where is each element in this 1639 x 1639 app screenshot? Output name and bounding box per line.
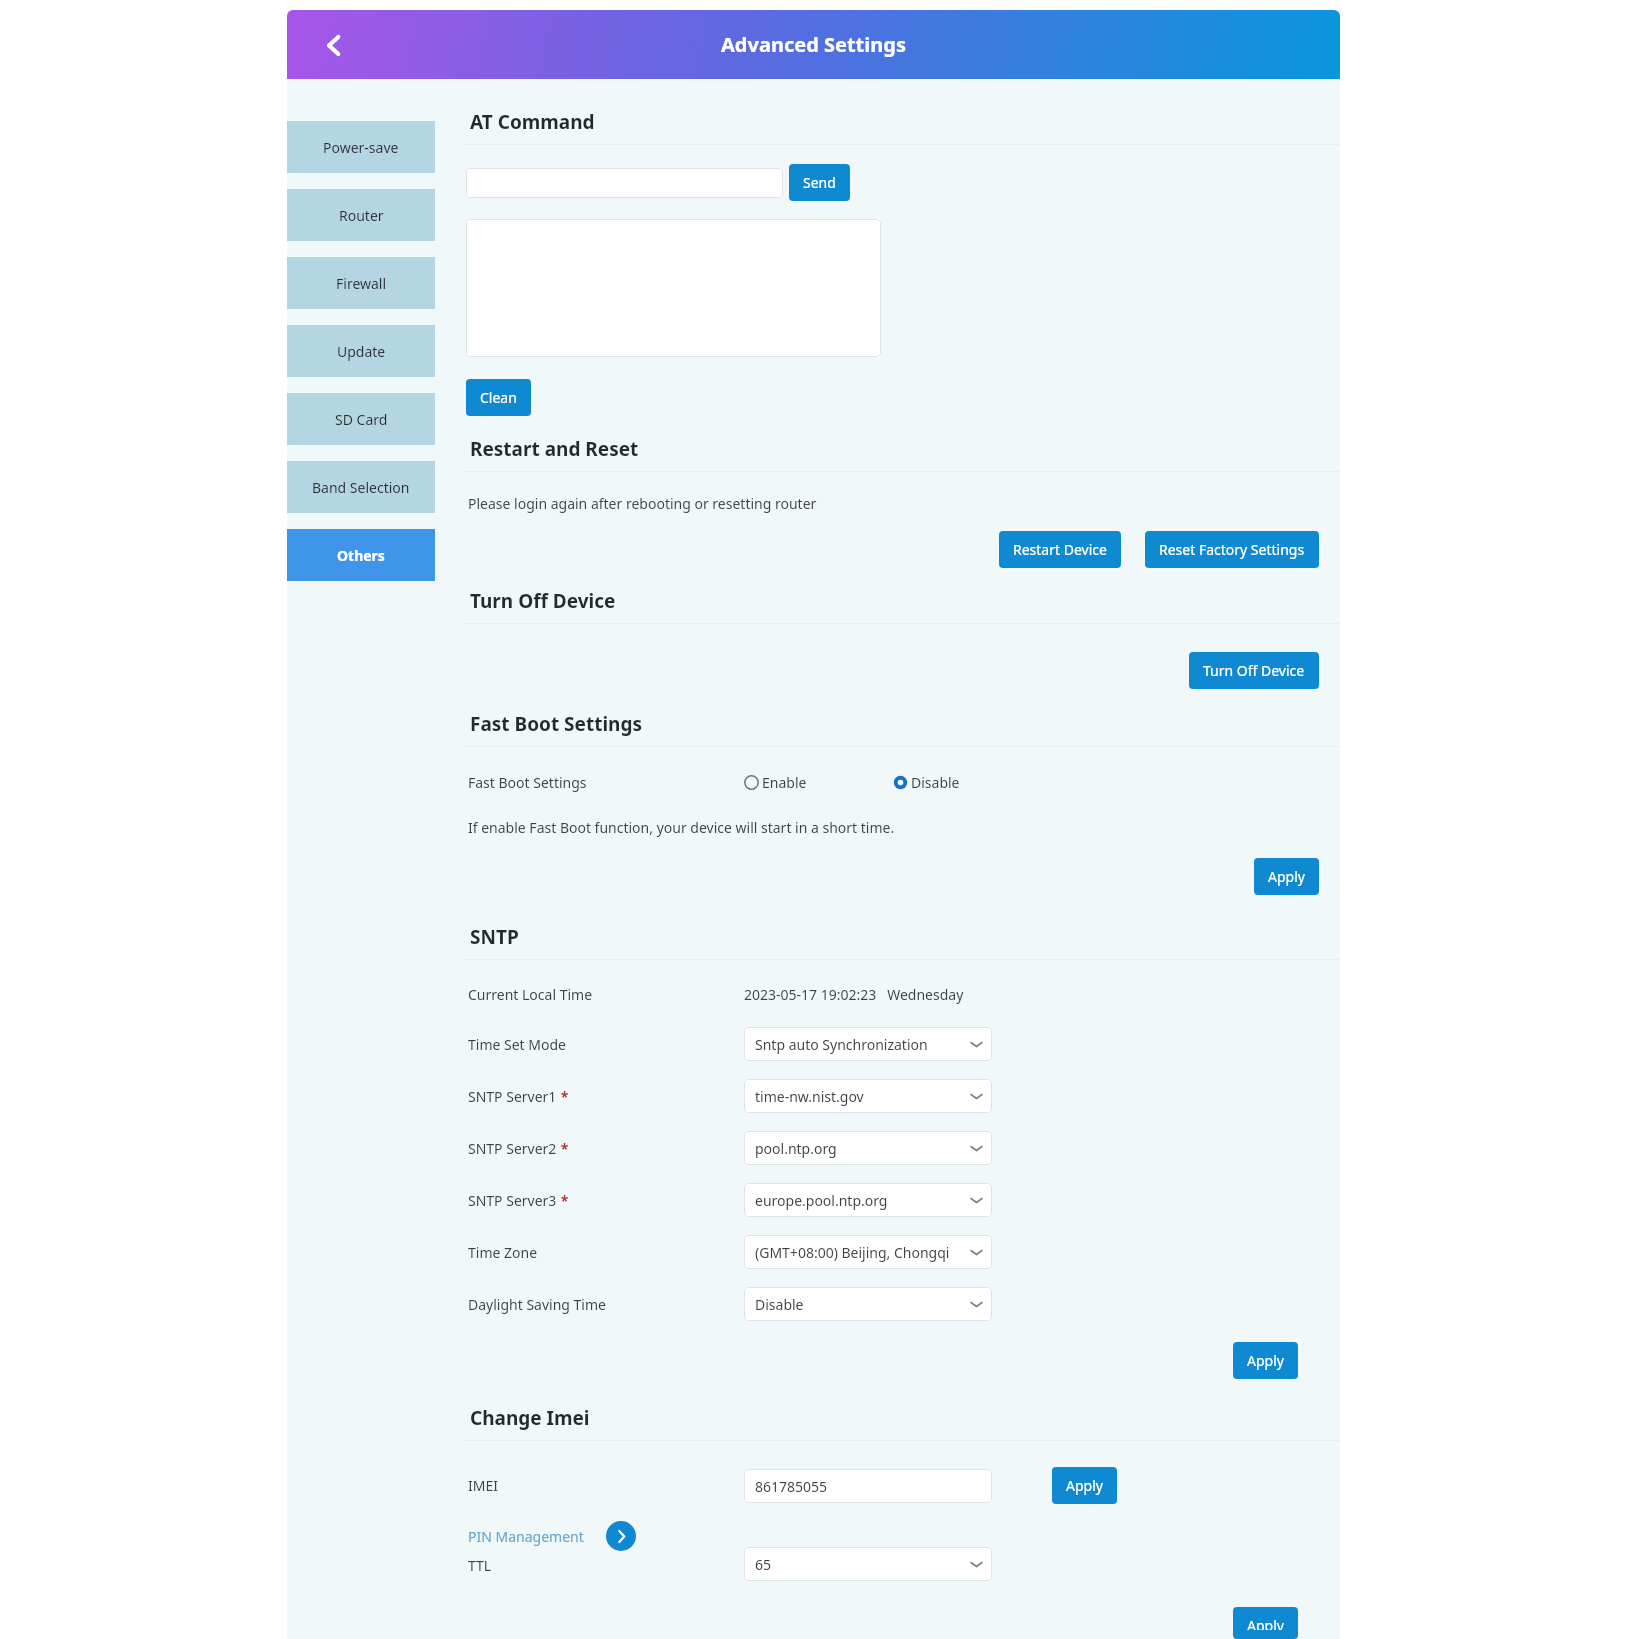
staticText: Fast Boot Settings	[470, 711, 642, 737]
button[interactable]: Enable	[744, 773, 807, 792]
button[interactable]: Disable	[893, 773, 960, 792]
button[interactable]: time-nw.nist.gov	[744, 1079, 992, 1113]
staticText: *	[557, 1139, 569, 1158]
staticText: pool.ntp.org	[755, 1139, 837, 1158]
button[interactable]: Others	[287, 529, 435, 581]
button[interactable]: Disable	[744, 1287, 992, 1321]
staticText: IMEI	[468, 1476, 744, 1495]
button[interactable]: Clean	[466, 379, 531, 416]
staticText: 65	[755, 1555, 772, 1574]
button[interactable]	[466, 168, 783, 198]
button[interactable]: Apply	[1233, 1342, 1298, 1379]
button[interactable]: europe.pool.ntp.org	[744, 1183, 992, 1217]
staticText: Apply	[1247, 1351, 1284, 1370]
staticText: SNTP Server1	[468, 1087, 557, 1106]
button[interactable]: Turn Off Device	[1189, 652, 1319, 689]
button[interactable]: Back	[317, 28, 351, 62]
staticText: Change Imei	[470, 1405, 590, 1431]
staticText: Restart and Reset	[470, 436, 639, 462]
staticText: Turn Off Device	[1203, 661, 1305, 680]
staticText: Time Zone	[468, 1243, 538, 1262]
staticText: AT Command	[470, 109, 595, 135]
button[interactable]: Firewall	[287, 257, 435, 309]
button[interactable]: PIN Management	[468, 1527, 584, 1546]
button[interactable]: SD Card	[287, 393, 435, 445]
staticText: If enable Fast Boot function, your devic…	[468, 818, 895, 837]
button[interactable]: Band Selection	[287, 461, 435, 513]
staticText: Restart Device	[1013, 540, 1107, 559]
button[interactable]: Apply	[1233, 1607, 1298, 1639]
button[interactable]: Open PIN Management	[606, 1521, 636, 1551]
staticText: Disable	[755, 1295, 804, 1314]
staticText: Update	[337, 342, 386, 361]
button[interactable]	[466, 219, 881, 357]
button[interactable]: 861785055	[744, 1469, 992, 1503]
button[interactable]: Sntp auto Synchronization	[744, 1027, 992, 1061]
staticText: 861785055	[755, 1477, 828, 1496]
button[interactable]: Update	[287, 325, 435, 377]
staticText: SNTP Server3	[468, 1191, 557, 1210]
button[interactable]: Router	[287, 189, 435, 241]
staticText: Advanced Settings	[721, 31, 906, 58]
staticText: TTL	[468, 1556, 492, 1575]
staticText: Power-save	[323, 138, 399, 157]
staticText: Reset Factory Settings	[1159, 540, 1305, 559]
staticText: Sntp auto Synchronization	[755, 1035, 928, 1054]
button[interactable]: Send	[789, 164, 850, 201]
staticText: SNTP Server2	[468, 1139, 557, 1158]
staticText: Band Selection	[312, 478, 410, 497]
staticText: SNTP	[470, 924, 519, 950]
button[interactable]: Restart Device	[999, 531, 1121, 568]
staticText: SD Card	[335, 410, 388, 429]
button[interactable]: (GMT+08:00) Beijing, Chongqi	[744, 1235, 992, 1269]
staticText: Time Set Mode	[468, 1035, 566, 1054]
staticText: Turn Off Device	[470, 588, 616, 614]
staticText: *	[557, 1191, 569, 1210]
staticText: Send	[803, 173, 836, 192]
staticText: (GMT+08:00) Beijing, Chongqi	[755, 1243, 950, 1262]
button[interactable]: 65	[744, 1547, 992, 1581]
staticText: Fast Boot Settings	[468, 773, 587, 792]
button[interactable]: Power-save	[287, 121, 435, 173]
staticText: Enable	[762, 773, 807, 792]
button[interactable]: Apply	[1052, 1467, 1117, 1504]
staticText: Please login again after rebooting or re…	[468, 494, 817, 513]
staticText: Firewall	[336, 274, 387, 293]
staticText: Router	[339, 206, 384, 225]
staticText: europe.pool.ntp.org	[755, 1191, 888, 1210]
staticText: Clean	[480, 388, 517, 407]
staticText: Disable	[911, 773, 960, 792]
staticText: time-nw.nist.gov	[755, 1087, 864, 1106]
button[interactable]: Apply	[1254, 858, 1319, 895]
staticText: Apply	[1247, 1616, 1284, 1630]
staticText: Apply	[1066, 1476, 1103, 1495]
staticText: 2023-05-17 19:02:23 Wednesday	[744, 985, 964, 1004]
staticText: Others	[337, 546, 385, 565]
staticText: *	[557, 1087, 569, 1106]
staticText: Daylight Saving Time	[468, 1295, 606, 1314]
button[interactable]: Reset Factory Settings	[1145, 531, 1319, 568]
staticText: Current Local Time	[468, 985, 593, 1004]
staticText: Apply	[1268, 867, 1305, 886]
button[interactable]: pool.ntp.org	[744, 1131, 992, 1165]
